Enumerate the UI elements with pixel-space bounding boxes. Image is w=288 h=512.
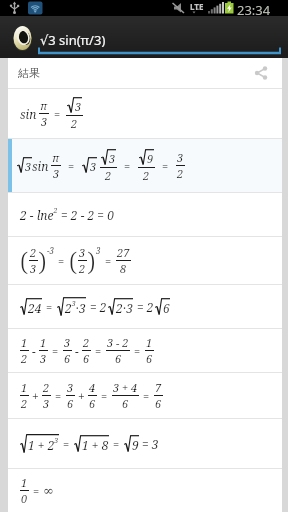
staticText: 23·3 bbox=[65, 299, 86, 317]
button[interactable]: ( bbox=[8, 237, 282, 284]
staticText: LTE bbox=[190, 1, 204, 12]
staticText: 2 bbox=[83, 335, 90, 350]
staticText: 1 bbox=[146, 335, 153, 350]
staticText: 1 + 8 bbox=[82, 437, 109, 453]
staticText: 1 bbox=[21, 380, 28, 395]
staticText: sin bbox=[32, 158, 49, 174]
staticText: 3 bbox=[96, 245, 101, 256]
staticText: ( bbox=[69, 243, 78, 278]
staticText: 3 bbox=[43, 396, 50, 411]
staticText: 3 bbox=[41, 114, 48, 129]
staticText: 1 + 23 bbox=[28, 436, 59, 454]
staticText: = bbox=[46, 299, 53, 314]
staticText: 6 bbox=[122, 396, 129, 411]
staticText: 3 bbox=[79, 245, 86, 260]
staticText: 1 bbox=[40, 335, 47, 350]
button[interactable]: 1 + 23 bbox=[8, 419, 282, 468]
staticText: 1 bbox=[21, 475, 28, 490]
staticText: 3 bbox=[53, 166, 60, 181]
staticText: = bbox=[55, 388, 62, 403]
staticText: = bbox=[52, 343, 59, 358]
staticText: = bbox=[105, 253, 112, 268]
staticText: √3 sin(π/3) bbox=[40, 31, 106, 49]
staticText: 6 bbox=[64, 351, 71, 366]
staticText: 3 bbox=[109, 151, 116, 166]
staticText: 4 bbox=[89, 380, 96, 395]
staticText: 6 bbox=[115, 351, 122, 366]
staticText: 7 bbox=[155, 380, 162, 395]
button[interactable]: 3 bbox=[8, 139, 282, 192]
button[interactable]: 1 bbox=[8, 469, 282, 512]
staticText: 3 + 4 bbox=[113, 380, 138, 395]
staticText: 3 bbox=[177, 150, 184, 165]
staticText: 2 bbox=[79, 261, 86, 276]
staticText: 6 bbox=[146, 351, 153, 366]
staticText: = bbox=[124, 158, 131, 173]
staticText: = bbox=[58, 253, 65, 268]
staticText: 3 bbox=[25, 159, 32, 174]
button[interactable]: sin bbox=[8, 89, 282, 138]
staticText: 3 bbox=[90, 159, 97, 174]
staticText: - bbox=[32, 343, 36, 359]
staticText: ( bbox=[20, 243, 29, 278]
staticText: 0 bbox=[21, 491, 28, 506]
staticText: 6 bbox=[67, 396, 74, 411]
staticText: ) bbox=[38, 243, 47, 278]
staticText: 9 bbox=[147, 151, 154, 166]
staticText: = bbox=[33, 483, 40, 498]
staticText: - bbox=[75, 343, 79, 359]
staticText: = 3 bbox=[142, 436, 159, 452]
staticText: 3 bbox=[40, 351, 47, 366]
staticText: 6 bbox=[155, 396, 162, 411]
button[interactable]: 24 bbox=[8, 285, 282, 328]
staticText: 6 bbox=[89, 396, 96, 411]
staticText: 2 - lne2 bbox=[20, 206, 58, 224]
staticText: 9 bbox=[132, 437, 139, 453]
staticText: + bbox=[78, 388, 85, 404]
staticText: 2 bbox=[105, 168, 112, 183]
button[interactable] bbox=[0, 16, 288, 58]
staticText: = bbox=[95, 343, 102, 358]
staticText: = bbox=[113, 436, 120, 451]
staticText: 6 bbox=[163, 300, 170, 316]
staticText: 24 bbox=[28, 300, 42, 316]
staticText: = 2 - 2 = 0 bbox=[61, 207, 114, 223]
staticText: ) bbox=[87, 243, 96, 278]
staticText: -3 bbox=[47, 245, 54, 256]
staticText: = bbox=[101, 388, 108, 403]
staticText: 23:34 bbox=[237, 1, 271, 17]
staticText: = 2 bbox=[90, 299, 107, 315]
staticText: 2 bbox=[21, 396, 28, 411]
button[interactable]: 1 bbox=[8, 373, 282, 418]
staticText: π bbox=[40, 98, 48, 113]
staticText: 2 bbox=[143, 168, 150, 183]
staticText: 27 bbox=[117, 245, 130, 260]
staticText: 結果 bbox=[18, 66, 40, 80]
staticText: 3 - 2 bbox=[107, 335, 129, 350]
staticText: = bbox=[54, 106, 61, 121]
staticText: 2 bbox=[177, 166, 184, 181]
staticText: + bbox=[32, 388, 39, 404]
staticText: 2 bbox=[71, 116, 78, 131]
staticText: 3 bbox=[75, 99, 82, 114]
button[interactable]: 2 - lne2 bbox=[8, 193, 282, 236]
staticText: = bbox=[134, 343, 141, 358]
staticText: ∞ bbox=[43, 483, 54, 498]
staticText: sin bbox=[20, 106, 37, 122]
staticText: 2 bbox=[43, 380, 50, 395]
staticText: = bbox=[143, 388, 150, 403]
staticText: = bbox=[162, 158, 169, 173]
staticText: π bbox=[52, 150, 60, 165]
staticText: 3 bbox=[30, 261, 37, 276]
button[interactable] bbox=[254, 66, 268, 80]
staticText: 2·3 bbox=[116, 300, 133, 316]
staticText: = bbox=[68, 158, 75, 173]
staticText: 3 bbox=[67, 380, 74, 395]
staticText: 3 bbox=[64, 335, 71, 350]
button[interactable]: 1 bbox=[8, 329, 282, 372]
staticText: 2 bbox=[30, 245, 37, 260]
staticText: 2 bbox=[21, 351, 28, 366]
staticText: 8 bbox=[120, 261, 127, 276]
staticText: = 2 bbox=[137, 299, 154, 315]
staticText: 6 bbox=[83, 351, 90, 366]
